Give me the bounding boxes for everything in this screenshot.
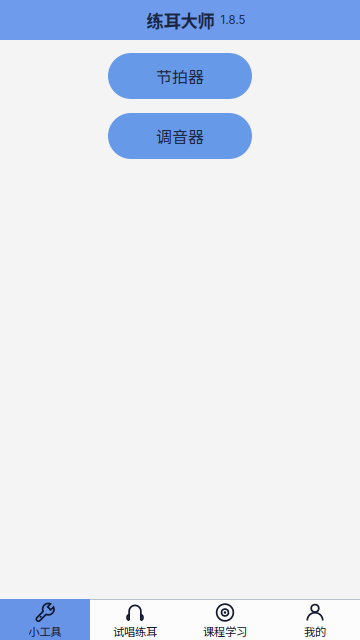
button[interactable]: 节拍器 <box>108 53 252 99</box>
staticText: 我的 <box>304 623 326 639</box>
staticText: 练耳大师 <box>146 7 214 32</box>
staticText: 试唱练耳 <box>113 623 157 639</box>
staticText: 小工具 <box>28 623 61 639</box>
button[interactable]: 课程学习 <box>180 599 270 640</box>
staticText: 1.8.5 <box>214 13 245 27</box>
staticText: 课程学习 <box>203 623 247 639</box>
staticText: 调音器 <box>156 124 204 148</box>
button[interactable]: 小工具 <box>0 599 90 640</box>
staticText: 节拍器 <box>156 64 204 88</box>
button[interactable]: 试唱练耳 <box>90 599 180 640</box>
button[interactable]: 调音器 <box>108 113 252 159</box>
button[interactable]: 我的 <box>270 599 360 640</box>
